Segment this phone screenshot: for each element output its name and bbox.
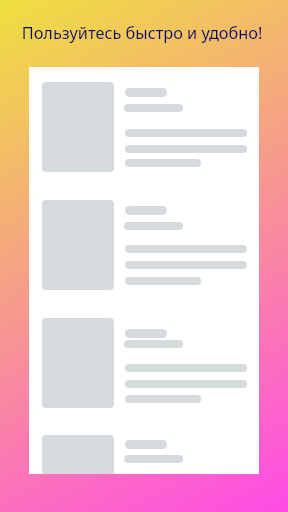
button[interactable]: Article placeholder [29, 318, 259, 425]
button[interactable]: Article placeholder [29, 82, 259, 189]
button[interactable]: Article placeholder [29, 200, 259, 307]
staticText: Пользуйтесь быстро и удобно! [0, 22, 286, 44]
button[interactable]: Article placeholder [29, 435, 259, 474]
